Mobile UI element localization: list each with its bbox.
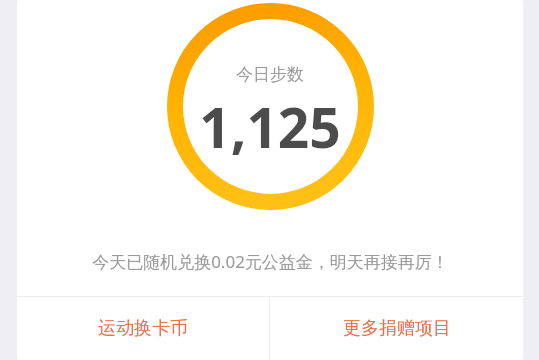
button[interactable]: 运动换卡币: [17, 297, 269, 360]
button[interactable]: 更多捐赠项目: [270, 297, 523, 360]
staticText: 运动换卡币: [98, 317, 188, 340]
staticText: 今日步数: [236, 64, 304, 85]
staticText: 更多捐赠项目: [343, 317, 451, 340]
staticText: 1,125: [199, 89, 341, 164]
staticText: 今天已随机兑换0.02元公益金，明天再接再厉！: [92, 250, 449, 273]
